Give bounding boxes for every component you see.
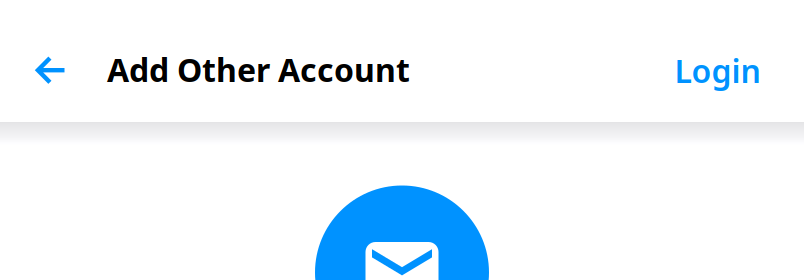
button[interactable]: Back	[22, 41, 80, 99]
staticText: Add Other Account	[107, 48, 410, 91]
staticText: Login	[674, 49, 760, 92]
button[interactable]: Login	[662, 39, 772, 102]
